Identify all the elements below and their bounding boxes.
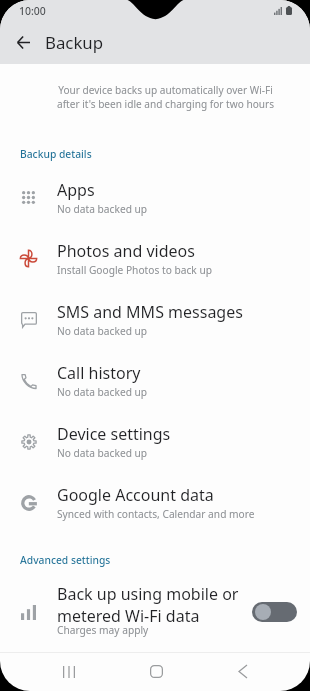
button[interactable]: Back bbox=[222, 652, 264, 691]
staticText: Apps bbox=[57, 179, 95, 201]
staticText: 10:00 bbox=[19, 4, 46, 18]
button[interactable]: Home bbox=[135, 652, 177, 691]
button[interactable]: Back bbox=[6, 25, 41, 60]
staticText: Back up using mobile or metered Wi-Fi da… bbox=[57, 583, 239, 627]
staticText: Backup bbox=[45, 31, 104, 54]
staticText: Synced with contacts, Calendar and more bbox=[57, 507, 255, 521]
staticText: No data backed up bbox=[57, 446, 148, 460]
button[interactable]: Device settings bbox=[0, 411, 310, 472]
button[interactable]: Back up using mobile or metered Wi-Fi da… bbox=[252, 602, 297, 622]
staticText: Charges may apply bbox=[57, 623, 149, 637]
button[interactable]: SMS and MMS messages bbox=[0, 289, 310, 350]
button[interactable]: Call history bbox=[0, 350, 310, 411]
button[interactable]: Recent apps bbox=[48, 652, 90, 691]
staticText: Your device backs up automatically over … bbox=[25, 83, 306, 111]
staticText: Photos and videos bbox=[57, 240, 195, 262]
staticText: Call history bbox=[57, 362, 141, 384]
staticText: Backup details bbox=[20, 147, 92, 161]
staticText: Install Google Photos to back up bbox=[57, 263, 212, 277]
button[interactable]: Back up using mobile or metered Wi-Fi da… bbox=[0, 579, 310, 645]
button[interactable]: Apps bbox=[0, 167, 310, 228]
button[interactable]: Photos and videos bbox=[0, 228, 310, 289]
staticText: No data backed up bbox=[57, 385, 148, 399]
staticText: Device settings bbox=[57, 423, 171, 445]
staticText: SMS and MMS messages bbox=[57, 301, 243, 323]
staticText: No data backed up bbox=[57, 202, 148, 216]
staticText: No data backed up bbox=[57, 324, 148, 338]
staticText: Advanced settings bbox=[20, 553, 111, 567]
staticText: Google Account data bbox=[57, 484, 214, 506]
button[interactable]: Google Account data bbox=[0, 472, 310, 533]
